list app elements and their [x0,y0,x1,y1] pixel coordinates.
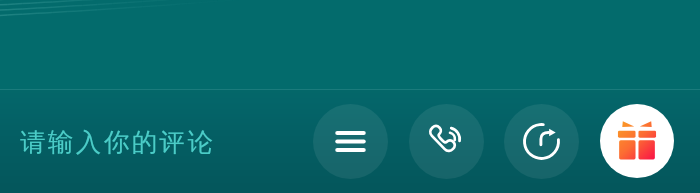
button[interactable]: Menu [313,104,388,179]
button[interactable]: Voice call [409,104,484,179]
staticText: 请输入你的评论 [20,126,216,158]
button[interactable]: Send gift [600,104,674,178]
button[interactable]: Refresh [504,104,579,179]
